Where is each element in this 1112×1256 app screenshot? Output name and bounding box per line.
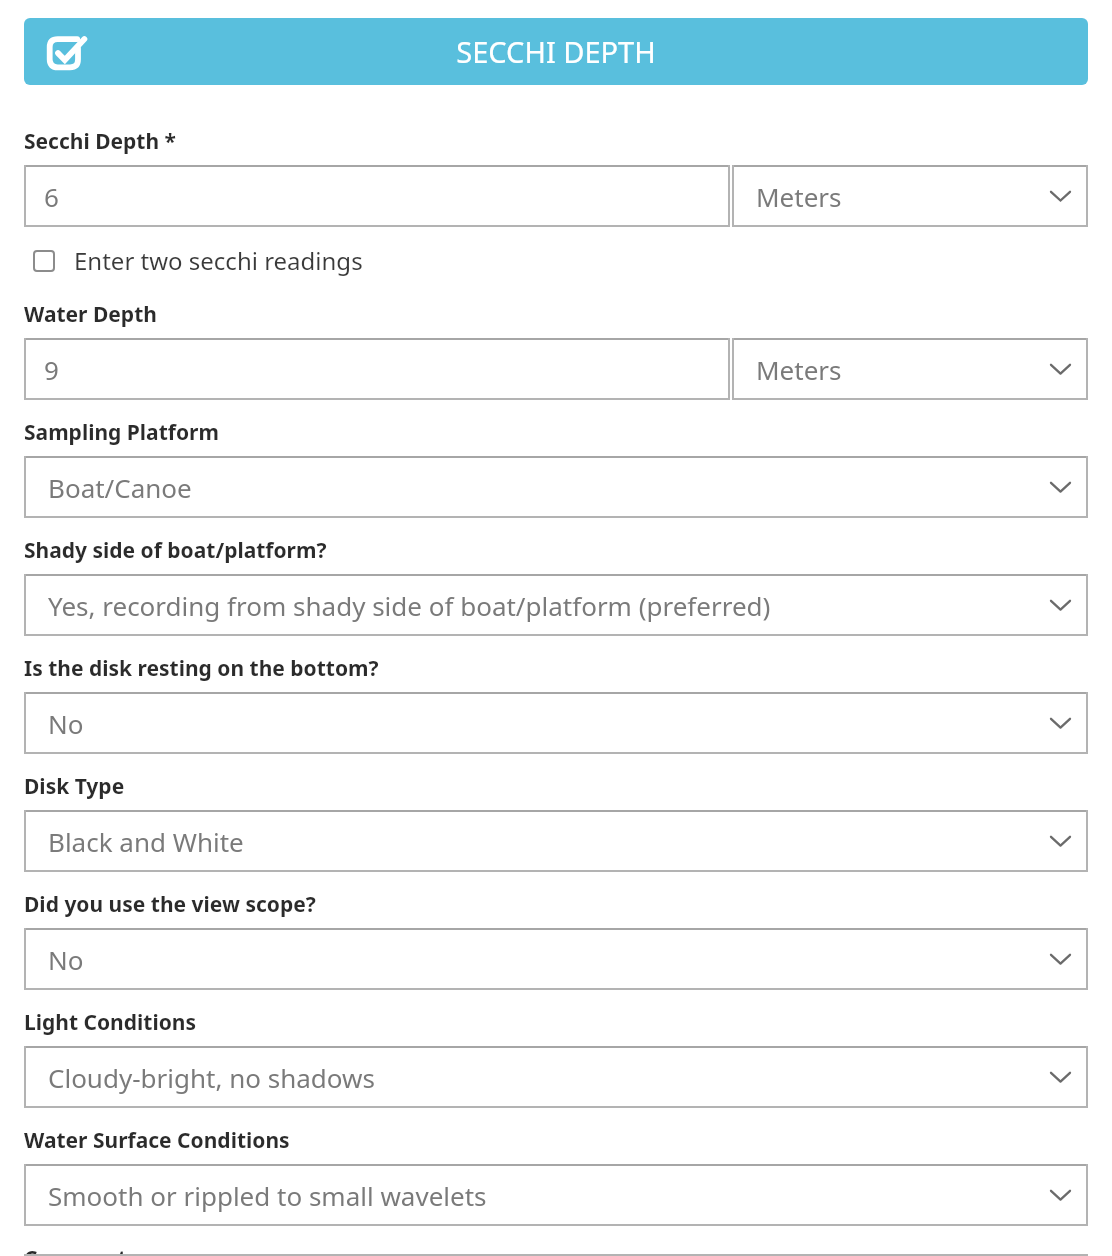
staticText: Enter two secchi readings bbox=[74, 244, 363, 277]
button[interactable]: Sampling Platform bbox=[24, 456, 1088, 518]
staticText: Smooth or rippled to small wavelets bbox=[48, 1178, 487, 1213]
staticText: Sampling Platform bbox=[24, 418, 219, 447]
staticText: 9 bbox=[44, 352, 59, 387]
button[interactable]: Light Conditions bbox=[24, 1046, 1088, 1108]
button[interactable]: Shady side of boat/platform? bbox=[24, 574, 1088, 636]
button[interactable]: Secchi depth value bbox=[24, 165, 730, 227]
staticText: Light Conditions bbox=[24, 1008, 197, 1037]
staticText: Secchi Depth * bbox=[24, 127, 176, 156]
staticText: No bbox=[48, 706, 84, 741]
button[interactable]: Disk Type bbox=[24, 810, 1088, 872]
staticText: Yes, recording from shady side of boat/p… bbox=[48, 588, 771, 623]
staticText: No bbox=[48, 942, 84, 977]
button[interactable]: Water depth value bbox=[24, 338, 730, 400]
button[interactable]: Enter two secchi readings bbox=[24, 241, 363, 280]
button[interactable]: Secchi depth units bbox=[732, 165, 1088, 227]
button[interactable]: Did you use the view scope? bbox=[24, 928, 1088, 990]
staticText: Water Depth bbox=[24, 300, 157, 329]
staticText: Comment bbox=[24, 1244, 127, 1256]
staticText: Is the disk resting on the bottom? bbox=[24, 654, 379, 683]
button[interactable]: Is the disk resting on the bottom? bbox=[24, 692, 1088, 754]
button[interactable]: Water depth units bbox=[732, 338, 1088, 400]
button[interactable]: Form bbox=[24, 18, 1088, 85]
staticText: Water Surface Conditions bbox=[24, 1126, 290, 1155]
staticText: Meters bbox=[756, 179, 842, 214]
staticText: Shady side of boat/platform? bbox=[24, 536, 327, 565]
staticText: SECCHI DEPTH bbox=[456, 32, 656, 71]
staticText: Disk Type bbox=[24, 772, 125, 801]
staticText: Meters bbox=[756, 352, 842, 387]
other: Form bbox=[46, 33, 86, 71]
staticText: 6 bbox=[44, 179, 59, 214]
button[interactable]: Water Surface Conditions bbox=[24, 1164, 1088, 1226]
staticText: Did you use the view scope? bbox=[24, 890, 316, 919]
staticText: Black and White bbox=[48, 824, 244, 859]
staticText: Boat/Canoe bbox=[48, 470, 192, 505]
staticText: Cloudy-bright, no shadows bbox=[48, 1060, 375, 1095]
